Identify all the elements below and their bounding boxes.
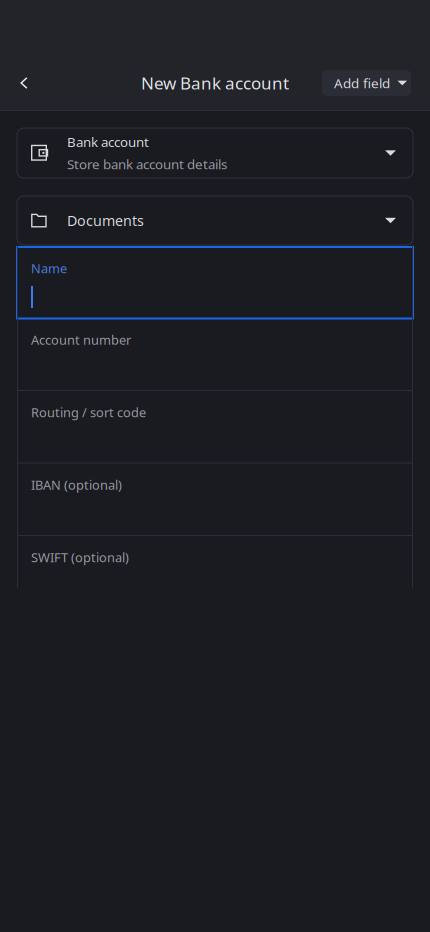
button[interactable]: Bank account — [17, 128, 413, 178]
staticText: IBAN (optional) — [31, 476, 122, 493]
button[interactable]: Add field — [322, 70, 411, 96]
staticText: Account number — [31, 331, 131, 348]
staticText: New Bank account — [141, 71, 289, 95]
staticText: Bank account — [67, 133, 149, 151]
button[interactable]: Documents — [17, 196, 413, 245]
button[interactable]: Back — [0, 58, 48, 108]
staticText: SWIFT (optional) — [31, 548, 129, 566]
button[interactable]: Account number — [17, 318, 413, 390]
button[interactable]: Routing / sort code — [17, 391, 413, 462]
staticText: Store bank account details — [67, 155, 227, 173]
staticText: Documents — [67, 211, 144, 230]
button[interactable]: Name — [17, 247, 413, 318]
staticText: Routing / sort code — [31, 403, 146, 421]
staticText: Add field — [334, 74, 390, 92]
staticText: Name — [31, 259, 67, 277]
button[interactable]: IBAN (optional) — [17, 463, 413, 535]
button[interactable]: SWIFT (optional) — [17, 536, 413, 588]
